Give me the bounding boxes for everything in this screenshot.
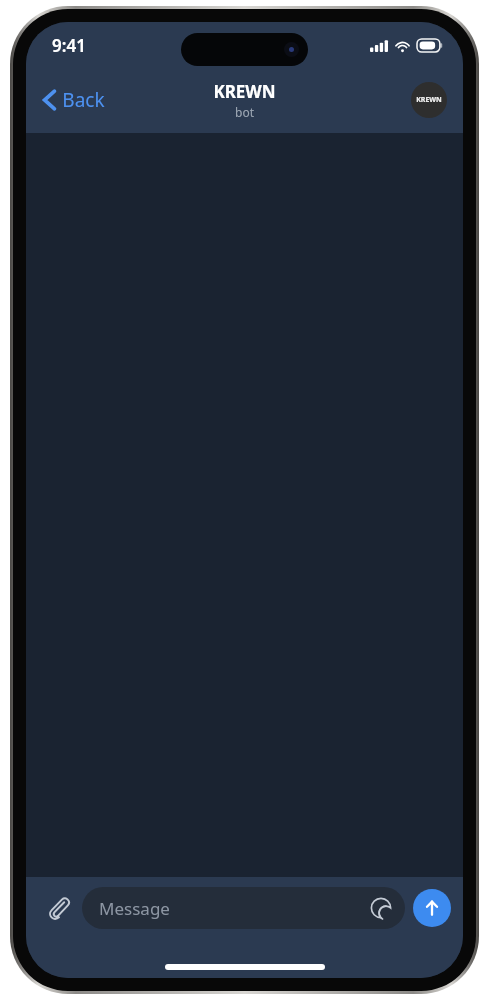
staticText: bot (235, 104, 254, 120)
staticText: 9:41 (52, 34, 86, 57)
staticText: KREWN (416, 95, 442, 105)
button[interactable]: Attach (38, 887, 80, 929)
staticText: KREWN (213, 80, 276, 103)
staticText: Back (62, 87, 105, 113)
button[interactable]: Stickers (365, 892, 397, 924)
staticText: Message (99, 897, 170, 920)
button[interactable]: Message (82, 887, 405, 929)
button[interactable]: Send (413, 889, 451, 927)
button[interactable]: Back (36, 81, 111, 119)
button[interactable]: Profile (411, 82, 447, 118)
